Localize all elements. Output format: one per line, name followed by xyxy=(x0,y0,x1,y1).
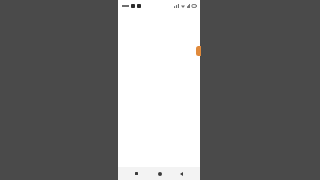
button[interactable]: Scroll indicator xyxy=(196,46,201,56)
button[interactable]: Recent apps xyxy=(132,169,141,178)
button[interactable]: Back xyxy=(177,169,186,178)
button[interactable]: Home xyxy=(155,169,164,178)
